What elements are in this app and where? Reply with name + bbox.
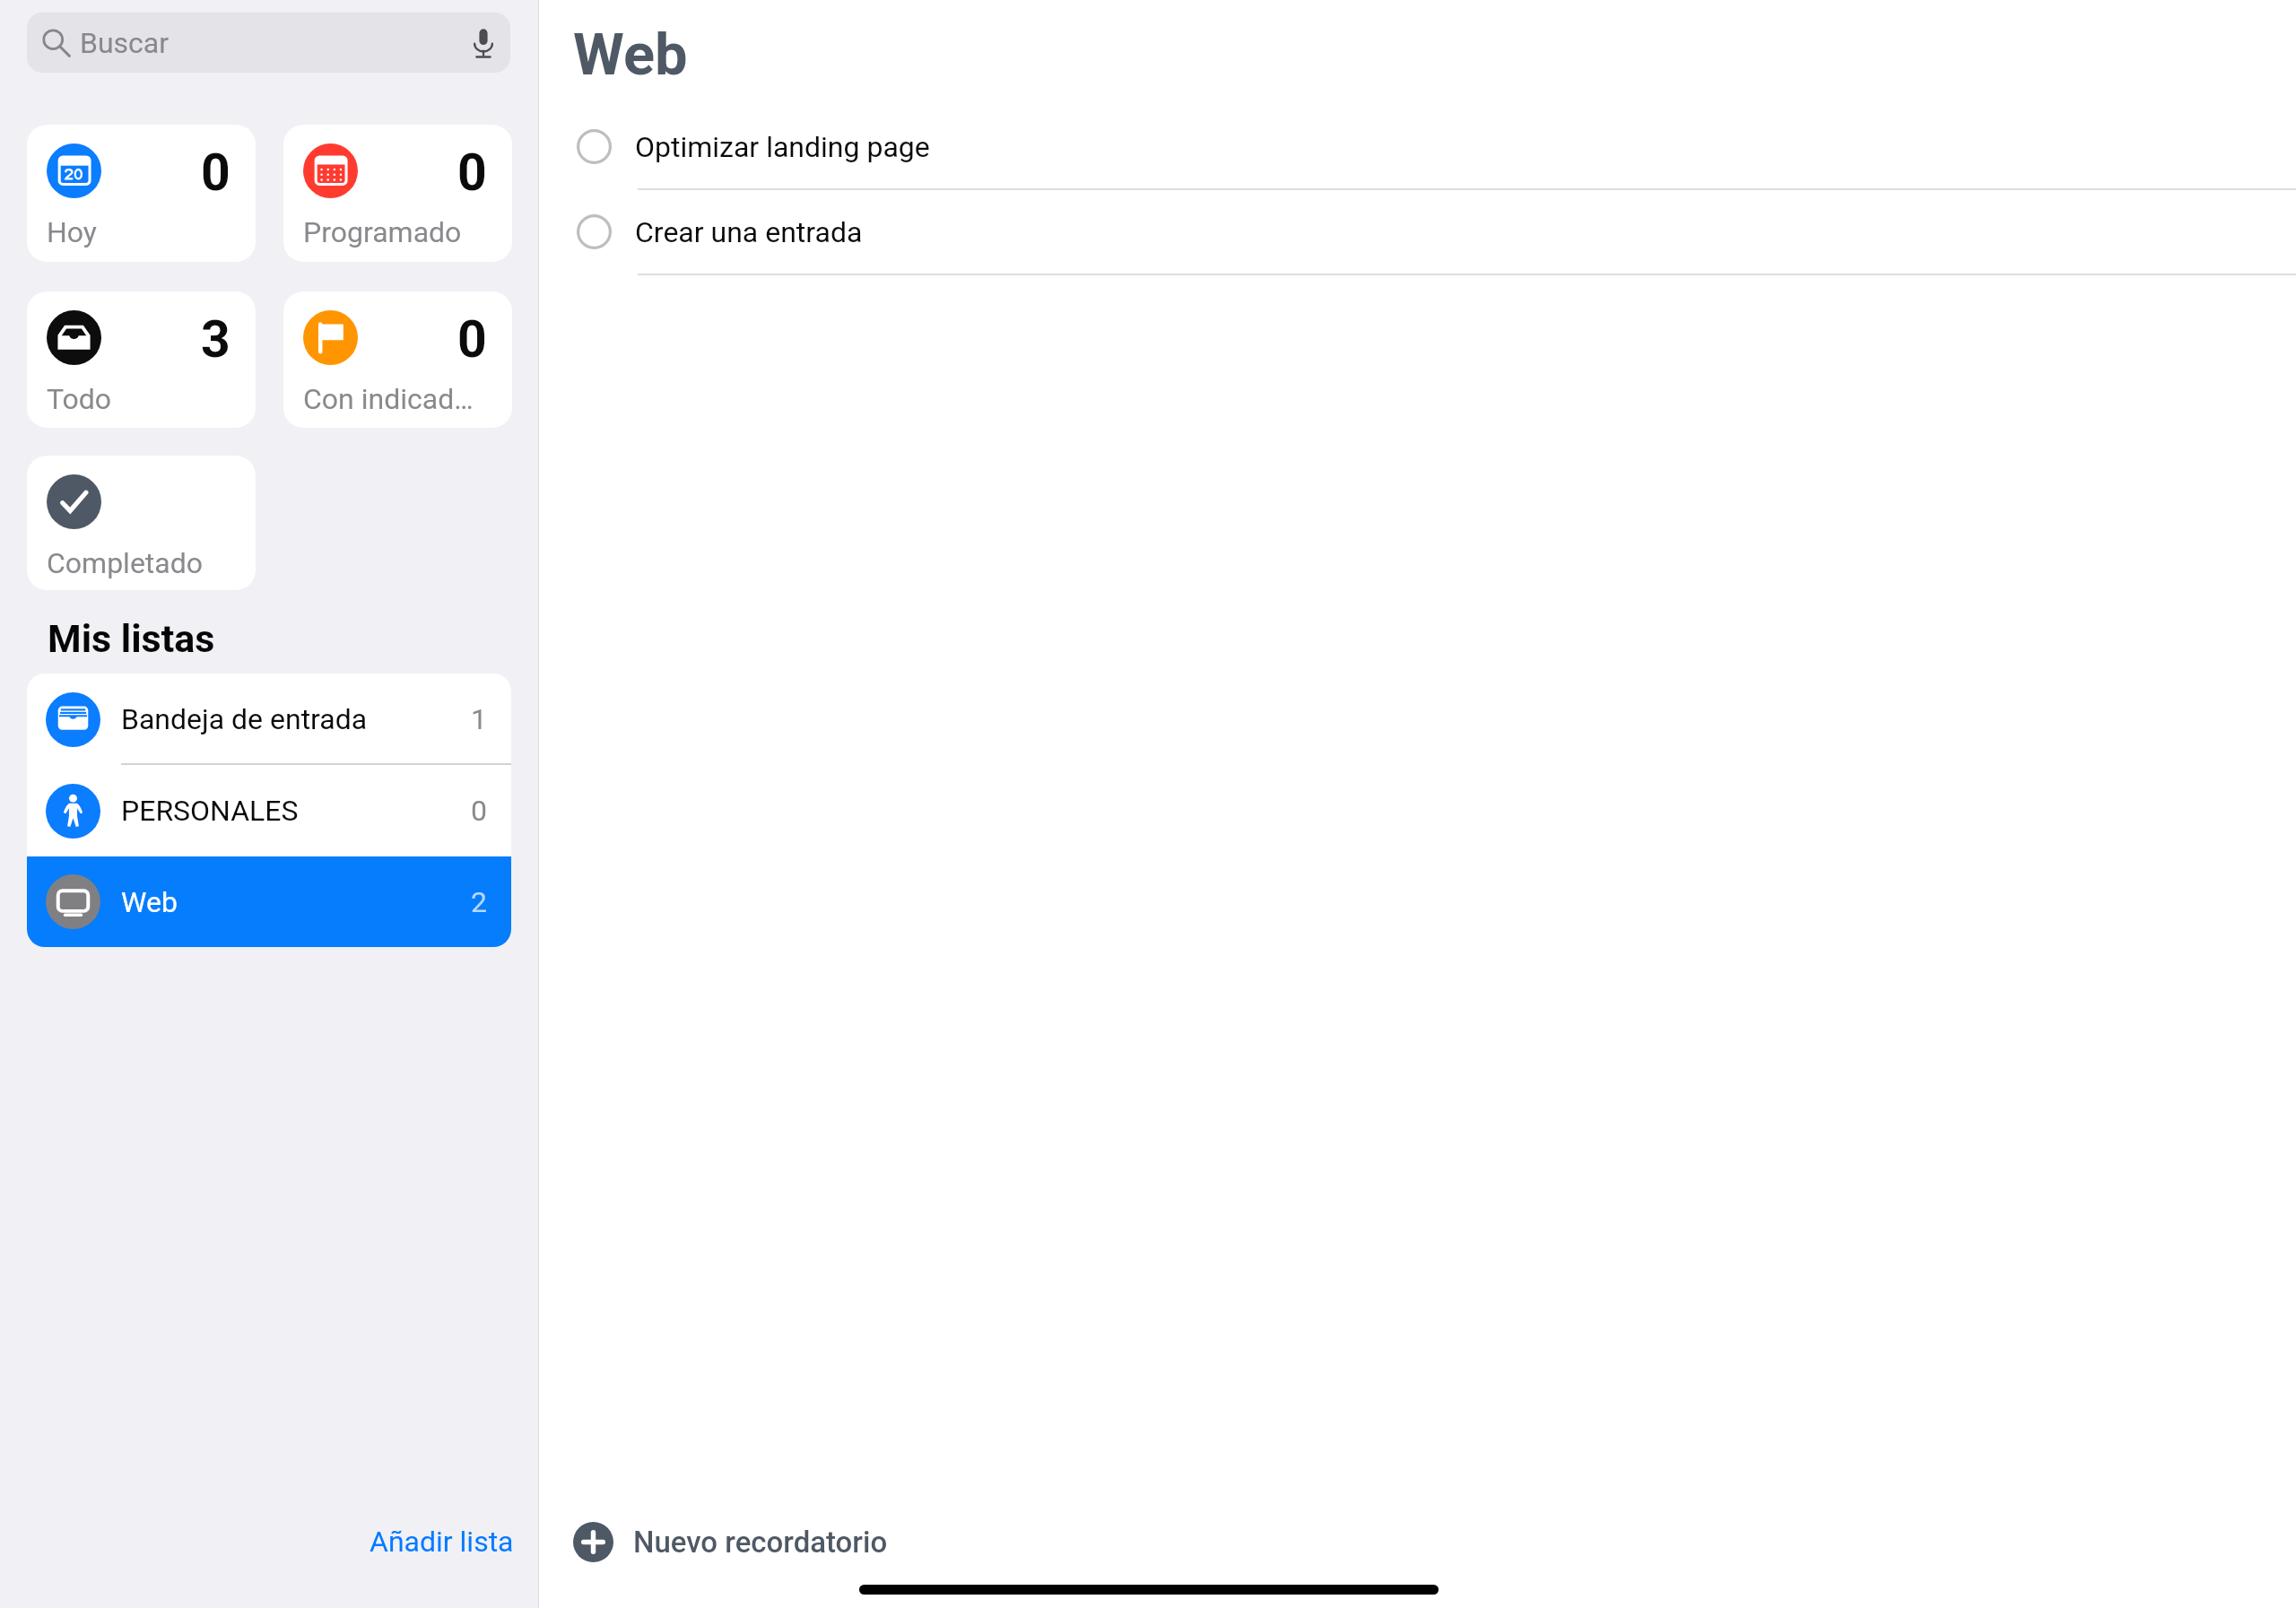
staticText: Hoy (47, 215, 97, 249)
button[interactable]: 0 (27, 125, 256, 262)
staticText: Crear una entrada (635, 215, 863, 249)
button[interactable]: Crear una entrada (539, 190, 2296, 274)
button[interactable]: Optimizar landing page (539, 105, 2296, 188)
staticText: 1 (471, 702, 487, 736)
staticText: Mis listas (48, 616, 215, 661)
button[interactable]: PERSONALES (27, 765, 511, 856)
button[interactable]: Bandeja de entrada (27, 674, 511, 765)
staticText: Optimizar landing page (635, 130, 930, 164)
button[interactable]: Nuevo recordatorio (539, 1509, 909, 1575)
staticText: Bandeja de entrada (121, 702, 368, 736)
staticText: Nuevo recordatorio (633, 1525, 888, 1560)
staticText: 0 (201, 143, 230, 203)
button[interactable]: 3 (27, 291, 256, 428)
staticText: 0 (457, 143, 487, 203)
staticText: 0 (471, 794, 487, 828)
staticText: Buscar (80, 26, 170, 60)
staticText: Completado (47, 546, 204, 580)
button[interactable]: 0 (283, 125, 512, 262)
button[interactable]: Web (27, 856, 511, 947)
button[interactable]: Completado (27, 456, 256, 590)
staticText: Todo (47, 382, 112, 416)
staticText: 3 (201, 309, 230, 369)
staticText: Añadir lista (370, 1525, 514, 1559)
staticText: Programado (303, 215, 462, 249)
staticText: PERSONALES (121, 794, 299, 828)
button[interactable]: 0 (283, 291, 512, 428)
button[interactable]: Buscar (27, 13, 510, 73)
staticText: Web (121, 885, 178, 919)
staticText: Web (573, 21, 688, 89)
button[interactable]: Añadir lista (343, 1513, 538, 1584)
staticText: 0 (457, 309, 487, 369)
button[interactable]: Dictado por voz (468, 28, 499, 58)
staticText: Con indicad… (303, 382, 474, 416)
staticText: 2 (471, 885, 487, 919)
